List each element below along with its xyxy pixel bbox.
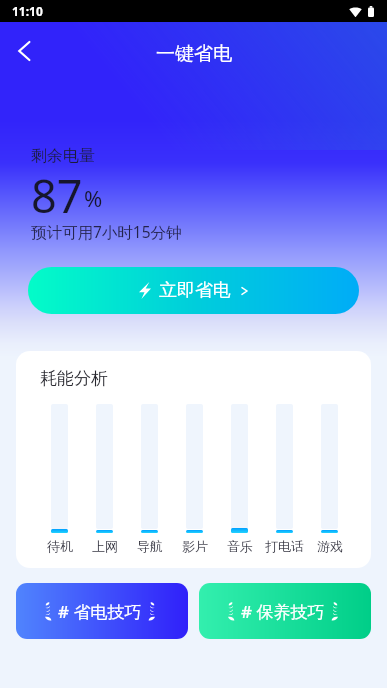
staticText: 影片 <box>182 538 208 554</box>
staticText: 一键省电 <box>156 42 232 66</box>
staticText: 打电话 <box>265 538 304 554</box>
button[interactable]: Back <box>2 28 48 74</box>
staticText: 待机 <box>47 538 73 554</box>
staticText: 立即省电 <box>159 279 231 302</box>
staticText: 游戏 <box>317 538 343 554</box>
staticText: # 省电技巧 <box>58 600 142 623</box>
staticText: % <box>84 183 103 213</box>
staticText: # 保养技巧 <box>241 600 325 623</box>
button[interactable]: # 保养技巧 <box>199 583 371 639</box>
staticText: 导航 <box>137 538 163 554</box>
staticText: 音乐 <box>227 538 253 554</box>
staticText: 上网 <box>92 538 118 554</box>
button[interactable]: 立即省电 <box>28 267 359 314</box>
staticText: 87 <box>31 165 83 226</box>
staticText: 耗能分析 <box>40 368 108 389</box>
staticText: 11:10 <box>12 3 43 19</box>
button[interactable]: # 省电技巧 <box>16 583 188 639</box>
staticText: 预计可用7小时15分钟 <box>31 221 182 242</box>
staticText: 剩余电量 <box>31 146 95 166</box>
